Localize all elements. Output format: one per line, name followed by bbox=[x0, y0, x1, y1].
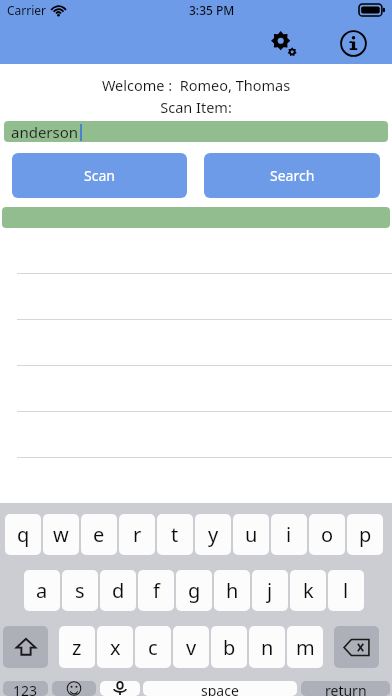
staticText: i bbox=[286, 521, 292, 548]
staticText: space bbox=[201, 681, 239, 696]
button[interactable]: Information bbox=[335, 25, 371, 61]
staticText: c bbox=[148, 634, 158, 661]
button[interactable]: n bbox=[249, 626, 285, 668]
button[interactable]: p bbox=[347, 514, 383, 555]
button[interactable]: y bbox=[195, 514, 231, 555]
button[interactable]: a bbox=[24, 570, 60, 611]
button[interactable] bbox=[0, 319, 392, 365]
staticText: r bbox=[133, 521, 142, 548]
button[interactable]: space bbox=[143, 681, 297, 696]
button[interactable]: z bbox=[59, 626, 95, 668]
button[interactable]: d bbox=[100, 570, 136, 611]
button[interactable]: w bbox=[43, 514, 79, 555]
staticText: Welcome : Romeo, Thomas bbox=[0, 75, 392, 95]
button[interactable]: x bbox=[97, 626, 133, 668]
staticText: g bbox=[188, 577, 201, 604]
button[interactable]: m bbox=[287, 626, 323, 668]
staticText: Scan Item: bbox=[0, 97, 392, 117]
staticText: t bbox=[171, 521, 179, 548]
button[interactable]: l bbox=[328, 570, 364, 611]
button[interactable]: Settings bbox=[265, 25, 301, 61]
staticText: return bbox=[325, 681, 367, 696]
staticText: x bbox=[110, 634, 121, 661]
staticText: y bbox=[208, 521, 219, 548]
staticText: a bbox=[36, 577, 48, 604]
button[interactable]: u bbox=[233, 514, 269, 555]
button[interactable]: f bbox=[138, 570, 174, 611]
staticText: w bbox=[53, 521, 69, 548]
staticText: e bbox=[93, 521, 105, 548]
staticText: m bbox=[296, 634, 315, 661]
staticText: q bbox=[17, 521, 30, 548]
button[interactable]: e bbox=[81, 514, 117, 555]
button[interactable]: return bbox=[301, 681, 390, 696]
staticText: d bbox=[112, 577, 125, 604]
button[interactable] bbox=[0, 411, 392, 457]
button[interactable]: v bbox=[173, 626, 209, 668]
button[interactable] bbox=[0, 457, 392, 503]
staticText: h bbox=[226, 577, 239, 604]
staticText: Scan bbox=[84, 166, 115, 185]
staticText: n bbox=[261, 634, 274, 661]
button[interactable]: h bbox=[214, 570, 250, 611]
button[interactable]: s bbox=[62, 570, 98, 611]
staticText: u bbox=[245, 521, 258, 548]
staticText: z bbox=[72, 634, 82, 661]
staticText: 3:35 PM bbox=[189, 2, 235, 18]
button[interactable]: k bbox=[290, 570, 326, 611]
button[interactable] bbox=[0, 365, 392, 411]
button[interactable]: b bbox=[211, 626, 247, 668]
button[interactable]: q bbox=[5, 514, 41, 555]
button[interactable]: j bbox=[252, 570, 288, 611]
button[interactable]: anderson bbox=[4, 121, 388, 142]
staticText: 123 bbox=[13, 681, 38, 696]
staticText: k bbox=[303, 577, 314, 604]
button[interactable]: o bbox=[309, 514, 345, 555]
staticText: j bbox=[267, 577, 273, 604]
staticText: Carrier bbox=[7, 2, 47, 18]
staticText: l bbox=[343, 577, 349, 604]
button[interactable] bbox=[0, 273, 392, 319]
staticText: b bbox=[223, 634, 236, 661]
button[interactable]: Dictate bbox=[100, 681, 140, 696]
staticText: v bbox=[186, 634, 197, 661]
button[interactable]: i bbox=[271, 514, 307, 555]
button[interactable]: Search bbox=[204, 153, 380, 198]
button[interactable]: r bbox=[119, 514, 155, 555]
button[interactable]: Backspace bbox=[334, 626, 379, 668]
staticText: anderson bbox=[11, 122, 79, 142]
button[interactable]: c bbox=[135, 626, 171, 668]
button[interactable]: g bbox=[176, 570, 212, 611]
button[interactable]: Scan bbox=[12, 153, 187, 198]
button[interactable]: 123 bbox=[3, 681, 48, 696]
staticText: o bbox=[321, 521, 334, 548]
button[interactable]: Emoji bbox=[52, 681, 96, 696]
staticText: Search bbox=[270, 166, 315, 185]
staticText: p bbox=[359, 521, 372, 548]
button[interactable]: Shift bbox=[3, 626, 48, 668]
button[interactable]: t bbox=[157, 514, 193, 555]
staticText: s bbox=[75, 577, 85, 604]
staticText: f bbox=[153, 577, 160, 604]
